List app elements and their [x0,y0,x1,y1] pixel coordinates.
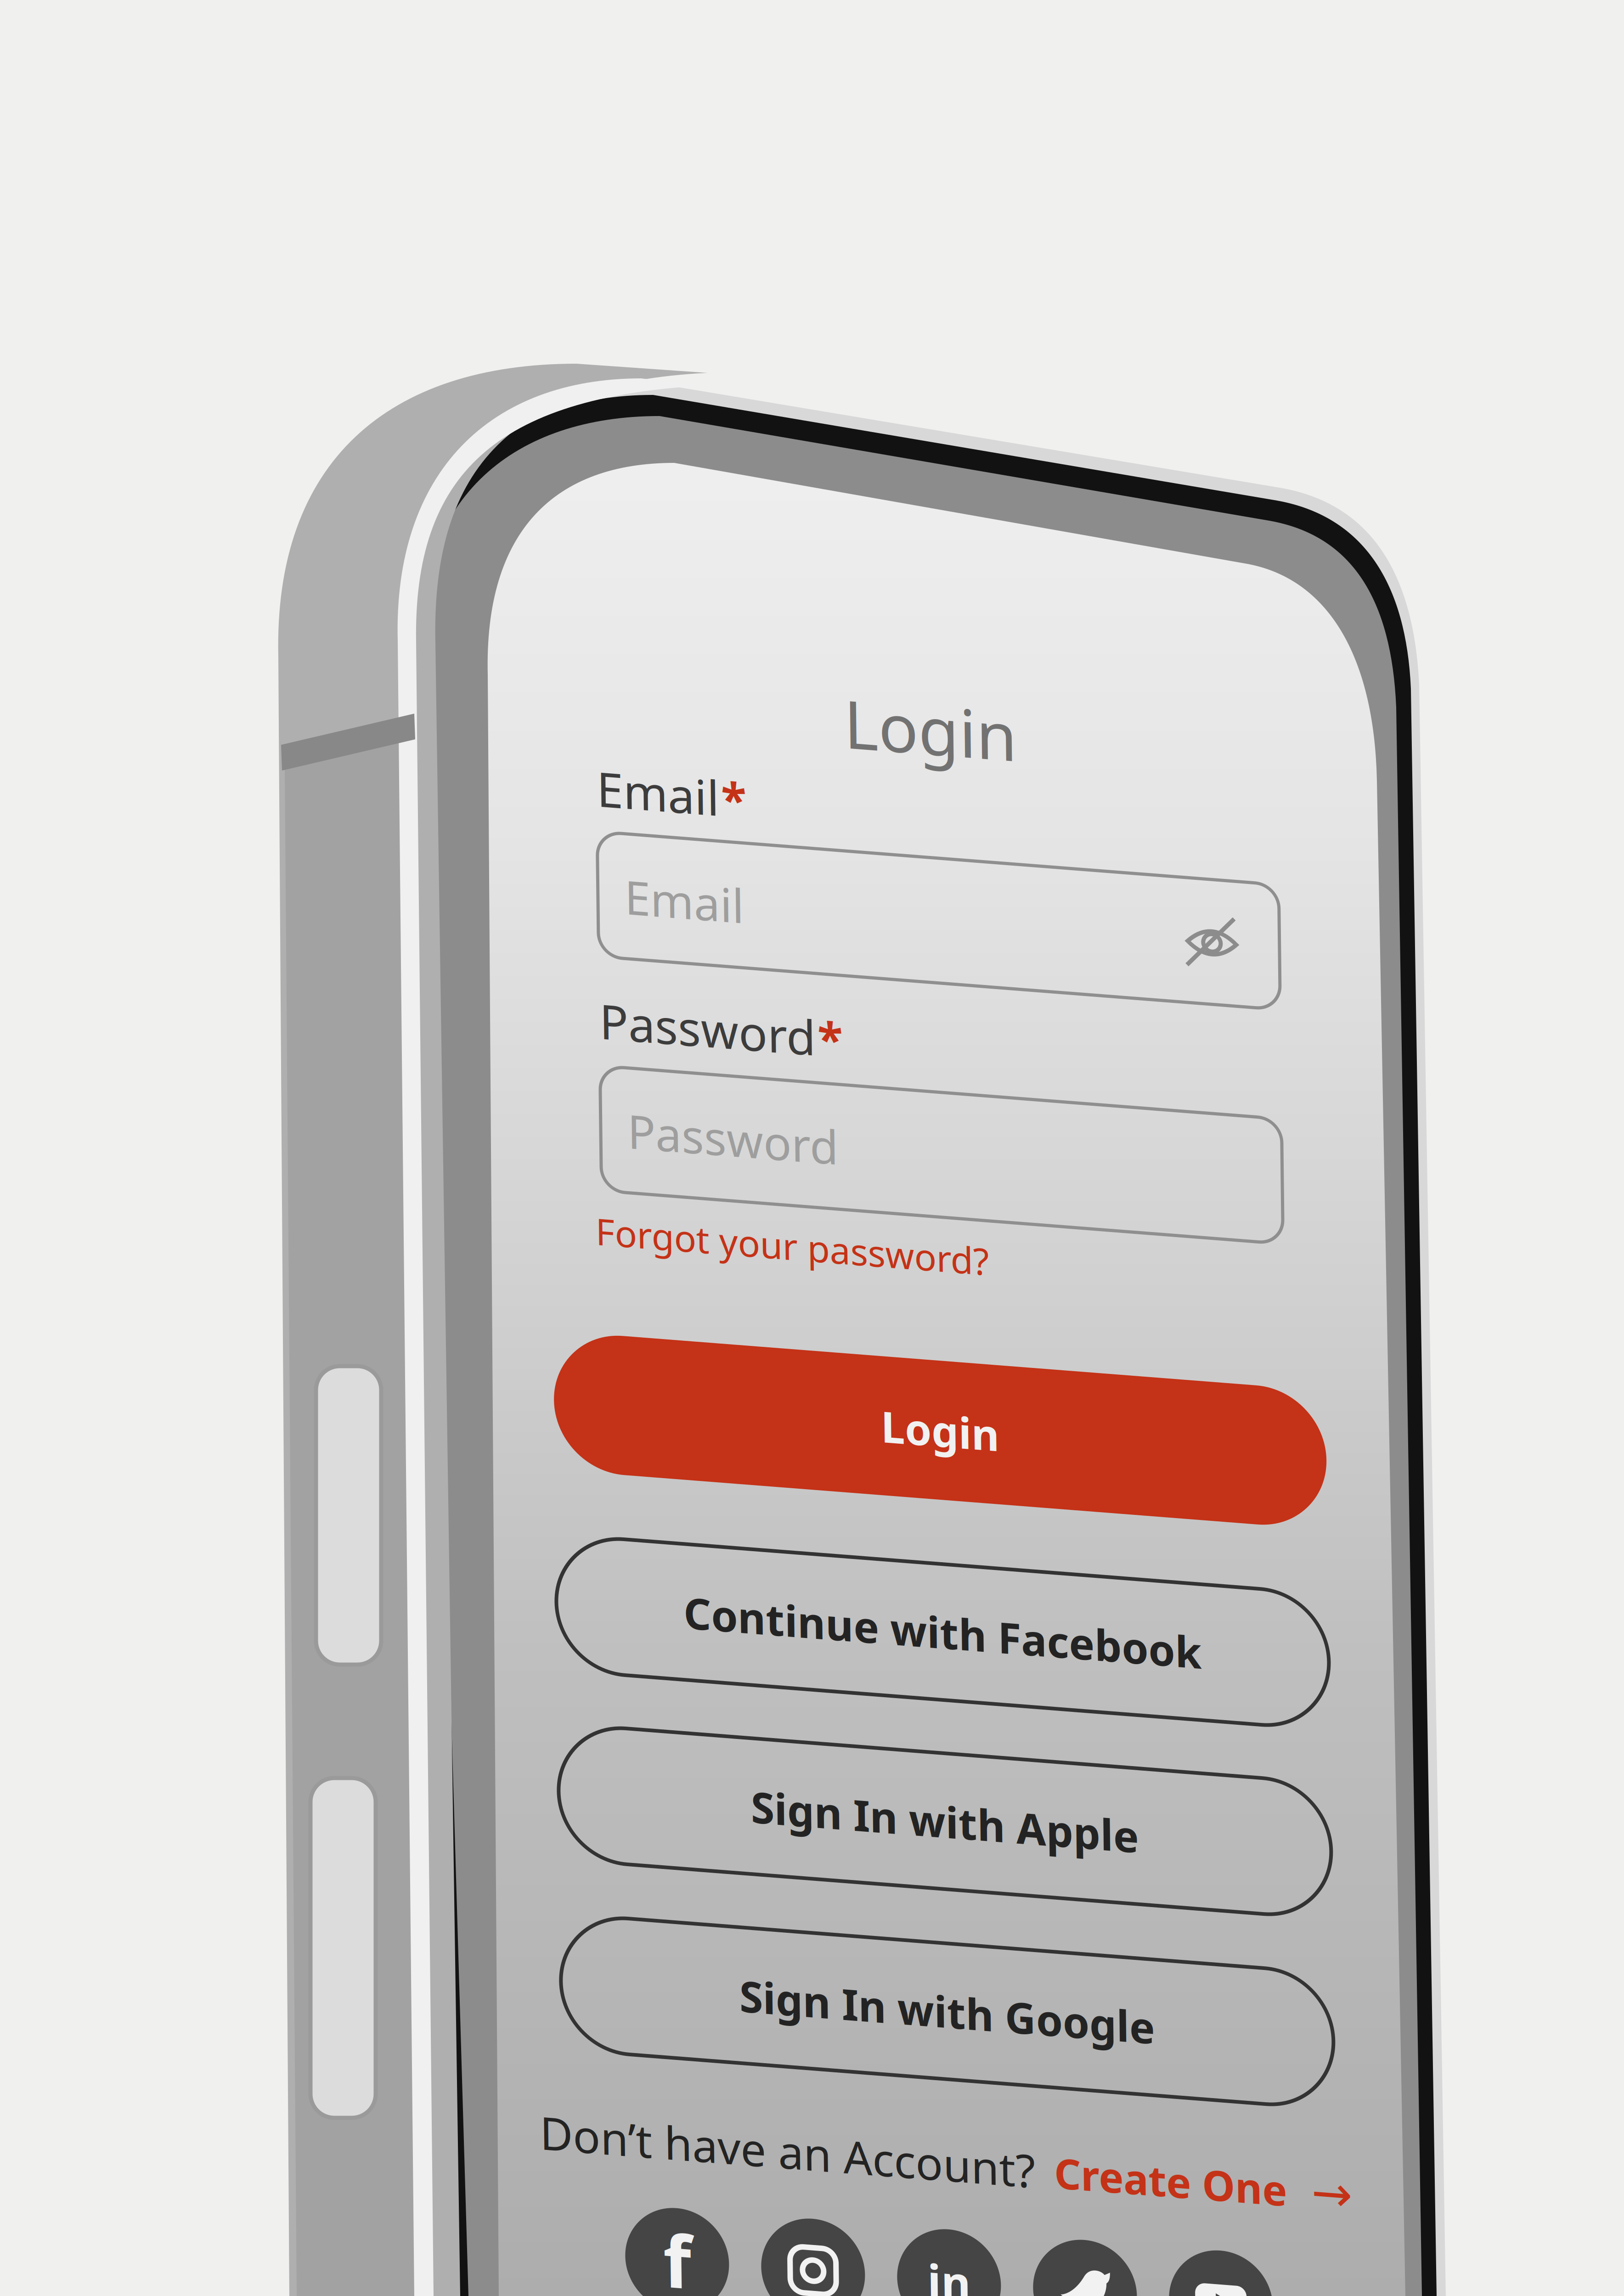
staticText: Password [619,1090,830,1152]
staticText: Email [619,856,739,918]
staticText: Sign In with Google [721,1949,1136,2006]
button[interactable]: Forgot your password? [586,1196,1091,1251]
staticText: Forgot your password? [586,1199,980,1248]
button[interactable]: YouTube [1147,2196,1251,2296]
staticText: Password [592,981,809,1045]
button[interactable]: Sign In with Google [542,1910,1315,2046]
staticText: * [811,982,836,1044]
button[interactable]: Sign In with Apple [542,1720,1315,1856]
staticText: in [906,2218,949,2278]
staticText: * [717,750,742,812]
staticText: Login [869,1368,988,1425]
button[interactable]: Login [542,1327,1315,1466]
button[interactable]: Twitter [1011,2196,1115,2296]
staticText: f [641,2200,669,2296]
button[interactable]: LinkedIn [875,2196,979,2296]
staticText: Don’t have an Account? [519,2100,1015,2160]
staticText: Create One [1034,2103,1267,2158]
button[interactable]: Instagram [739,2196,843,2296]
staticText: Email [592,749,715,812]
staticText: Continue with Facebook [670,1570,1188,1627]
button[interactable]: Facebook [603,2196,707,2296]
staticText: Sign In with Apple [735,1759,1123,1816]
staticText: Login [841,652,1014,740]
button[interactable]: Continue with Facebook [542,1531,1315,1666]
staticText: → [1291,2102,1332,2158]
button[interactable]: Don’t have an Account? [519,2098,1355,2162]
